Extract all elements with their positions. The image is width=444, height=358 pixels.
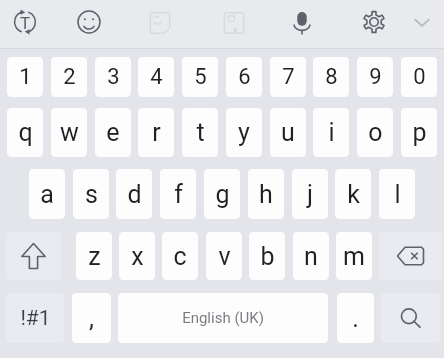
button[interactable]: o [357, 108, 393, 157]
button[interactable]: 0 [401, 57, 437, 97]
button[interactable]: 6 [226, 57, 262, 97]
staticText: , [89, 304, 94, 333]
button[interactable]: Settings [360, 8, 388, 36]
staticText: 8 [325, 64, 338, 90]
staticText: w [60, 118, 79, 147]
staticText: c [173, 242, 187, 271]
button[interactable]: Backspace [379, 232, 442, 280]
staticText: s [85, 180, 98, 209]
button[interactable]: Hide keyboard [408, 8, 436, 36]
button[interactable]: 8 [313, 57, 349, 97]
button[interactable]: 7 [270, 57, 306, 97]
button[interactable]: q [7, 108, 43, 157]
button[interactable]: b [249, 232, 285, 280]
button[interactable]: 5 [182, 57, 218, 97]
button[interactable]: g [204, 169, 240, 219]
button[interactable]: z [76, 232, 112, 280]
staticText: h [259, 180, 273, 209]
staticText: m [343, 242, 365, 271]
staticText: 2 [63, 64, 76, 90]
button[interactable]: n [293, 232, 329, 280]
button[interactable]: k [335, 169, 371, 219]
button[interactable]: !#1 [6, 293, 64, 343]
button[interactable]: 2 [51, 57, 87, 97]
staticText: 4 [150, 64, 163, 90]
staticText: o [368, 118, 383, 147]
button[interactable]: e [95, 108, 131, 157]
staticText: a [40, 180, 54, 209]
button[interactable]: l [379, 169, 415, 219]
button[interactable]: h [248, 169, 284, 219]
staticText: v [218, 242, 231, 271]
button[interactable]: y [226, 108, 262, 157]
staticText: . [352, 304, 359, 333]
staticText: !#1 [20, 306, 51, 331]
button[interactable]: p [401, 108, 437, 157]
staticText: u [281, 118, 295, 147]
staticText: English (UK) [182, 309, 264, 327]
staticText: x [131, 242, 144, 271]
staticText: 3 [107, 64, 120, 90]
staticText: r [152, 118, 161, 147]
staticText: l [394, 180, 401, 209]
button[interactable]: v [206, 232, 242, 280]
staticText: 5 [194, 64, 207, 90]
button[interactable]: r [138, 108, 174, 157]
staticText: 9 [369, 64, 382, 90]
staticText: 7 [282, 64, 295, 90]
button[interactable]: x [119, 232, 155, 280]
staticText: f [174, 180, 183, 209]
button[interactable]: t [182, 108, 218, 157]
button[interactable]: English (UK) [118, 293, 328, 343]
button[interactable]: i [313, 108, 349, 157]
staticText: z [88, 242, 101, 271]
staticText: p [412, 118, 427, 147]
staticText: j [307, 180, 313, 209]
button[interactable]: 1 [7, 57, 43, 97]
staticText: n [304, 242, 318, 271]
button[interactable]: Search [381, 293, 440, 343]
button[interactable]: , [72, 293, 111, 343]
staticText: k [347, 180, 360, 209]
button[interactable]: w [51, 108, 87, 157]
button[interactable]: Voice input [288, 8, 316, 36]
button[interactable]: Emoji [75, 8, 103, 36]
button[interactable]: u [270, 108, 306, 157]
staticText: q [18, 118, 33, 147]
staticText: 0 [413, 64, 426, 90]
button[interactable]: f [160, 169, 196, 219]
button[interactable]: s [73, 169, 109, 219]
button[interactable]: d [116, 169, 152, 219]
button[interactable]: 9 [357, 57, 393, 97]
staticText: d [127, 180, 142, 209]
staticText: i [328, 118, 335, 147]
staticText: t [196, 118, 205, 147]
staticText: e [106, 118, 120, 147]
button[interactable]: 3 [95, 57, 131, 97]
staticText: g [215, 180, 230, 209]
button[interactable]: 4 [138, 57, 174, 97]
button[interactable]: m [336, 232, 372, 280]
staticText: T [16, 13, 34, 33]
staticText: 6 [238, 64, 251, 90]
staticText: b [260, 242, 275, 271]
button[interactable]: c [162, 232, 198, 280]
button[interactable]: a [29, 169, 65, 219]
button[interactable]: . [337, 293, 374, 343]
button[interactable]: Shift [6, 232, 61, 280]
staticText: 1 [19, 64, 32, 90]
staticText: y [238, 118, 250, 147]
button[interactable]: j [292, 169, 328, 219]
button[interactable]: Translate [11, 8, 39, 36]
button[interactable]: Stickers [148, 11, 172, 35]
button[interactable]: GIF [222, 11, 246, 35]
